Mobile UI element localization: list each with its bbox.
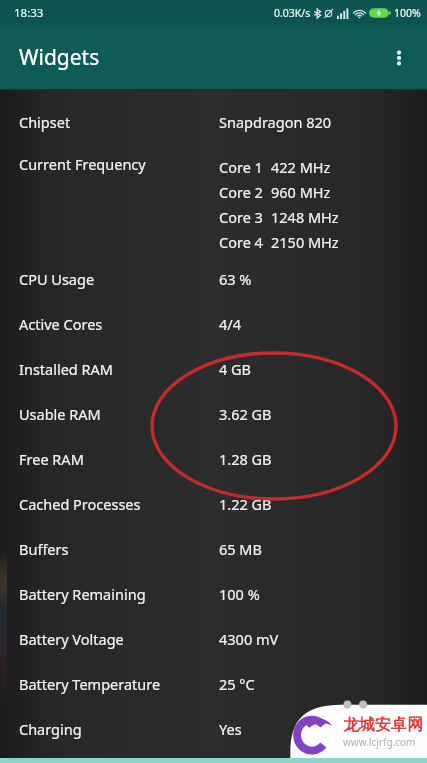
- staticText: Current Frequency: [19, 154, 219, 174]
- button[interactable]: CPU Usage: [0, 256, 427, 301]
- staticText: Core 1: [219, 157, 271, 177]
- staticText: 422 MHz: [271, 157, 331, 177]
- staticText: Charging: [19, 719, 219, 739]
- staticText: Buffers: [19, 539, 219, 559]
- staticText: Cached Processes: [19, 494, 219, 514]
- staticText: Core 4: [219, 232, 271, 252]
- staticText: www.lcjrfg.com: [343, 735, 416, 749]
- staticText: 65 MB: [219, 539, 262, 559]
- button[interactable]: Battery Temperature: [0, 661, 427, 706]
- button[interactable]: Free RAM: [0, 436, 427, 481]
- staticText: Usable RAM: [19, 404, 219, 424]
- button[interactable]: Chipset: [0, 100, 427, 144]
- staticText: Chipset: [19, 112, 219, 132]
- staticText: Core 2: [219, 182, 271, 202]
- staticText: 100%: [394, 6, 421, 20]
- staticText: 100 %: [219, 584, 260, 604]
- staticText: 4300 mV: [219, 629, 279, 649]
- staticText: 1.28 GB: [219, 449, 272, 469]
- staticText: CPU Usage: [19, 269, 219, 289]
- staticText: 4/4: [219, 314, 241, 334]
- button[interactable]: Cached Processes: [0, 481, 427, 526]
- staticText: 63 %: [219, 269, 252, 289]
- staticText: Free RAM: [19, 449, 219, 469]
- staticText: Battery Temperature: [19, 674, 219, 694]
- button[interactable]: Usable RAM: [0, 391, 427, 436]
- staticText: Installed RAM: [19, 359, 219, 379]
- button[interactable]: Current Frequency: [0, 144, 427, 256]
- button[interactable]: Buffers: [0, 526, 427, 571]
- button[interactable]: More options: [377, 36, 421, 80]
- staticText: Active Cores: [19, 314, 219, 334]
- staticText: 龙城安卓网: [343, 715, 423, 735]
- button[interactable]: Installed RAM: [0, 346, 427, 391]
- staticText: 0.03K/s: [274, 6, 311, 20]
- staticText: 2150 MHz: [271, 232, 339, 252]
- staticText: 4 GB: [219, 359, 252, 379]
- staticText: Battery Remaining: [19, 584, 219, 604]
- staticText: Core 3: [219, 207, 271, 227]
- button[interactable]: Battery Voltage: [0, 616, 427, 661]
- staticText: Snapdragon 820: [219, 112, 332, 132]
- button[interactable]: Battery Remaining: [0, 571, 427, 616]
- staticText: 1248 MHz: [271, 207, 339, 227]
- staticText: 3.62 GB: [219, 404, 272, 424]
- staticText: 25 °C: [219, 674, 255, 694]
- button[interactable]: Charging: [0, 706, 427, 751]
- staticText: Yes: [219, 719, 242, 739]
- staticText: 960 MHz: [271, 182, 331, 202]
- staticText: 1.22 GB: [219, 494, 272, 514]
- staticText: Battery Voltage: [19, 629, 219, 649]
- staticText: 18:33: [14, 5, 44, 21]
- button[interactable]: Active Cores: [0, 301, 427, 346]
- staticText: Widgets: [19, 43, 100, 72]
